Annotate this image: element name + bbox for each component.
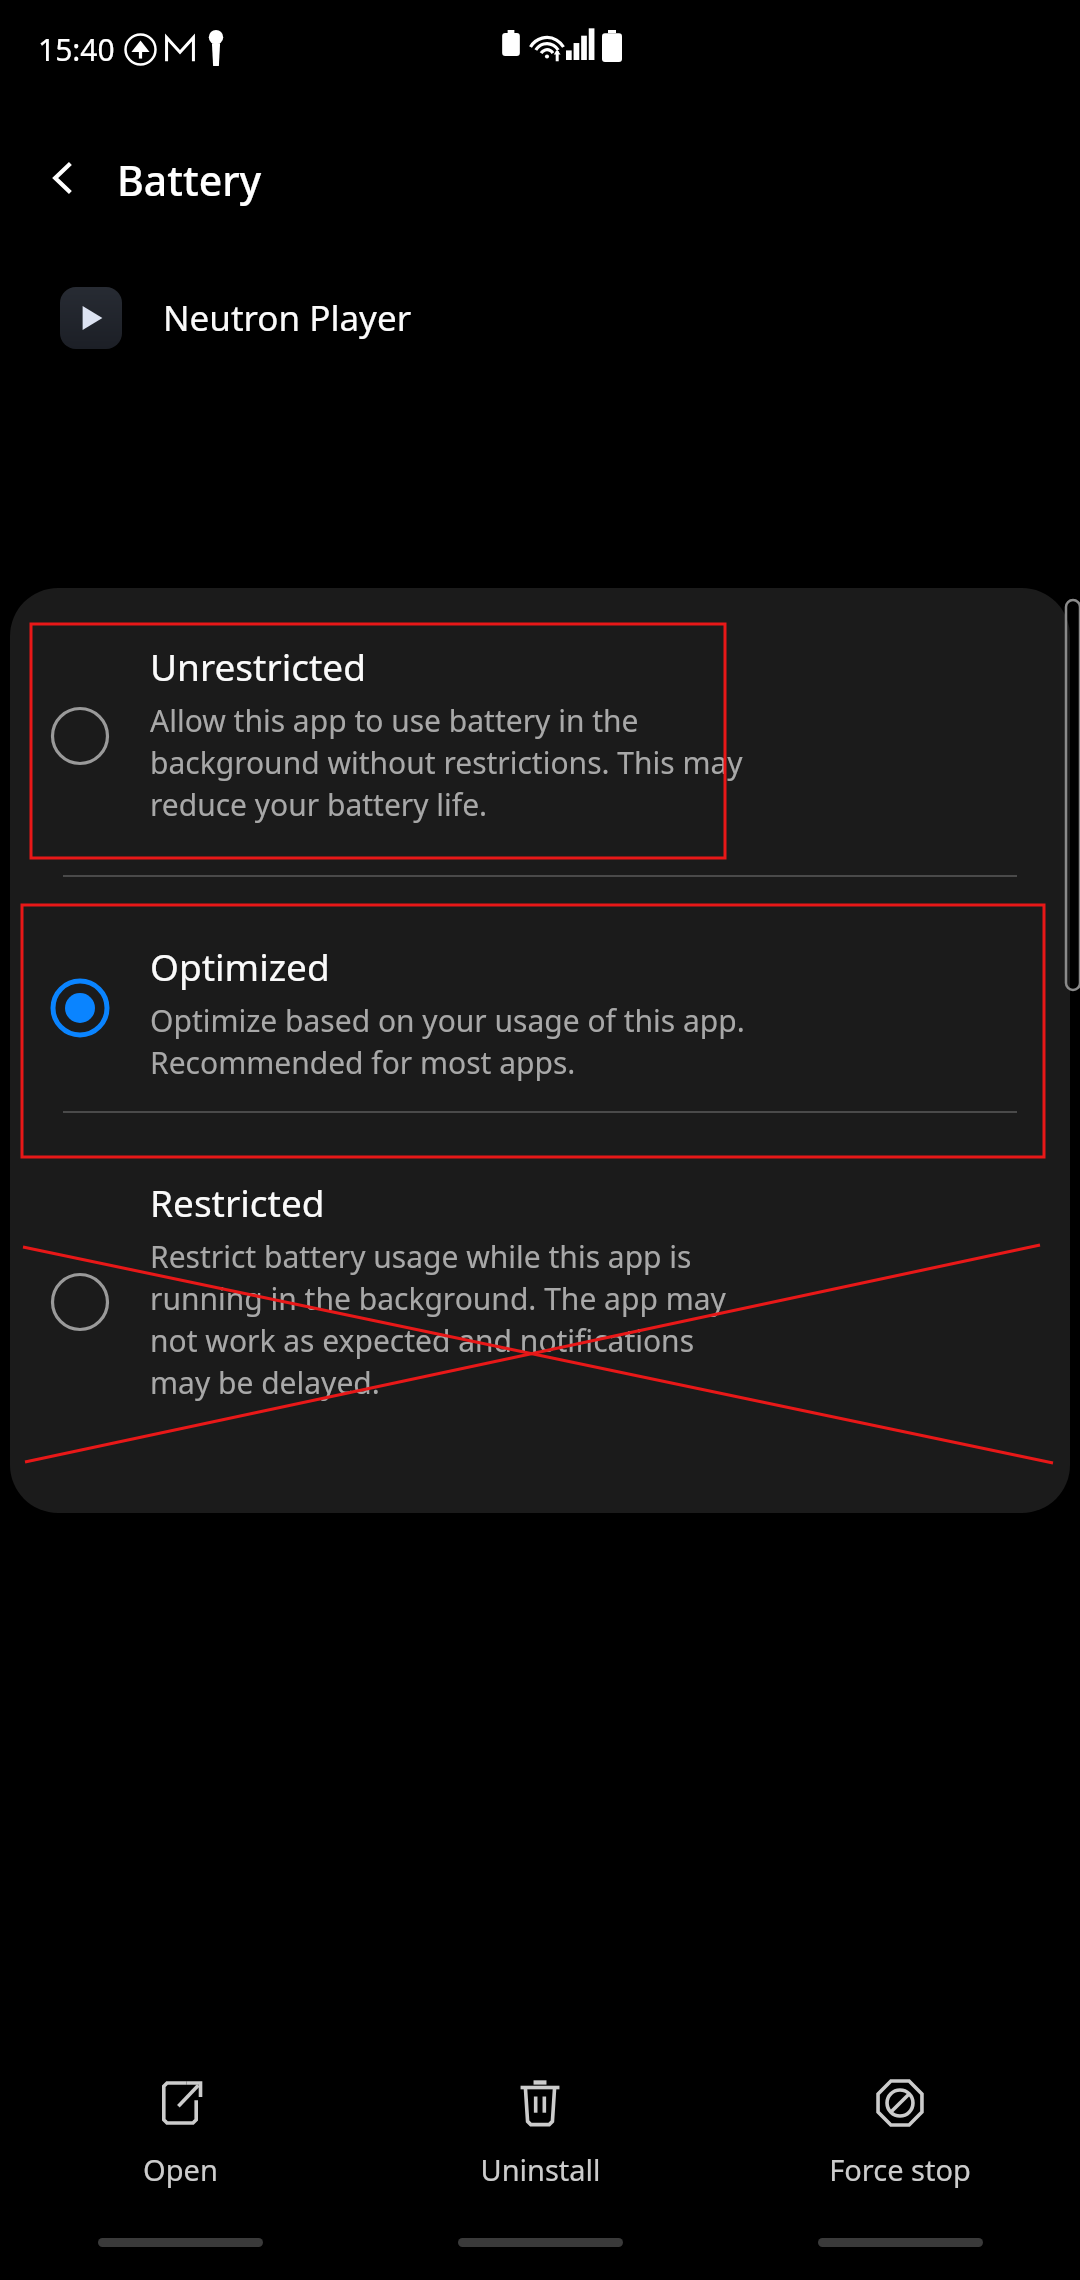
staticText: Battery xyxy=(117,152,262,208)
staticText: 15:40 xyxy=(38,29,115,70)
staticText: Open xyxy=(143,2150,218,2189)
button[interactable]: Optimized xyxy=(10,894,1070,1094)
staticText: Unrestricted xyxy=(150,641,366,691)
button[interactable]: Restricted xyxy=(10,1130,1070,1430)
staticText: Neutron Player xyxy=(163,294,412,342)
staticText: Restrict battery usage while this app is… xyxy=(150,1236,726,1403)
button[interactable]: Open xyxy=(0,2060,360,2189)
button[interactable]: Neutron Player xyxy=(0,268,1080,368)
staticText: Force stop xyxy=(829,2150,971,2189)
button[interactable]: Unrestricted xyxy=(10,588,1070,858)
staticText: Allow this app to use battery in the bac… xyxy=(150,700,743,825)
staticText: Optimized xyxy=(150,941,330,991)
button[interactable]: Force stop xyxy=(720,2060,1080,2189)
button[interactable]: Back xyxy=(26,140,102,216)
staticText: Optimize based on your usage of this app… xyxy=(150,1000,745,1083)
staticText: Restricted xyxy=(150,1177,325,1227)
button[interactable]: Uninstall xyxy=(360,2060,720,2189)
staticText: Uninstall xyxy=(480,2150,601,2189)
